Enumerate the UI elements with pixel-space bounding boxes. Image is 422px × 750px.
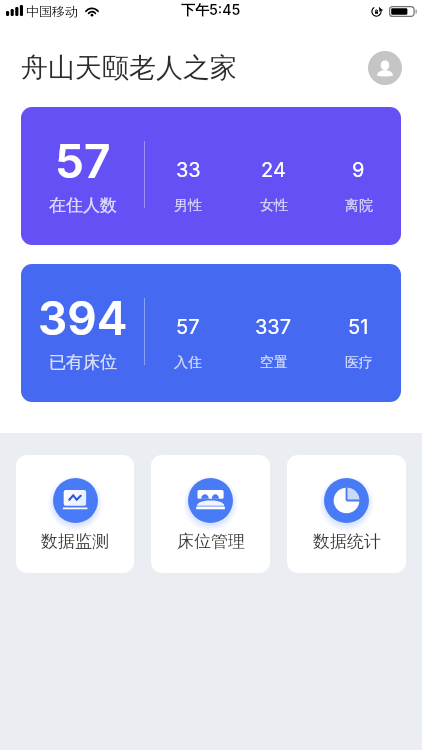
staticText: 9 <box>352 158 365 182</box>
other: Statistics <box>324 478 369 523</box>
staticText: 已有床位 <box>49 352 117 373</box>
button[interactable]: Statistics <box>287 455 406 573</box>
button[interactable]: 57 <box>21 107 401 245</box>
staticText: 51 <box>348 315 369 339</box>
staticText: 下午5:45 <box>181 1 241 19</box>
staticText: 入住 <box>174 354 202 372</box>
staticText: 医疗 <box>345 354 373 372</box>
staticText: 离院 <box>345 197 373 215</box>
staticText: 33 <box>176 158 201 182</box>
button[interactable]: Profile <box>368 51 402 85</box>
staticText: 中国移动 <box>26 3 78 19</box>
staticText: 舟山天颐老人之家 <box>21 51 237 85</box>
staticText: 337 <box>255 315 292 339</box>
other: Data monitoring <box>53 478 98 523</box>
staticText: 床位管理 <box>177 531 245 552</box>
staticText: 空置 <box>260 354 288 372</box>
staticText: 57 <box>55 133 111 189</box>
staticText: 女性 <box>260 197 288 215</box>
staticText: 在住人数 <box>49 195 117 216</box>
button[interactable]: 394 <box>21 264 401 402</box>
staticText: 数据监测 <box>41 531 109 552</box>
staticText: 数据统计 <box>313 531 381 552</box>
staticText: 24 <box>261 158 286 182</box>
button[interactable]: Data monitoring <box>16 455 134 573</box>
staticText: 394 <box>38 290 128 346</box>
staticText: 男性 <box>174 197 202 215</box>
staticText: 57 <box>176 315 200 339</box>
other: Bed management <box>188 478 233 523</box>
button[interactable]: Bed management <box>151 455 270 573</box>
